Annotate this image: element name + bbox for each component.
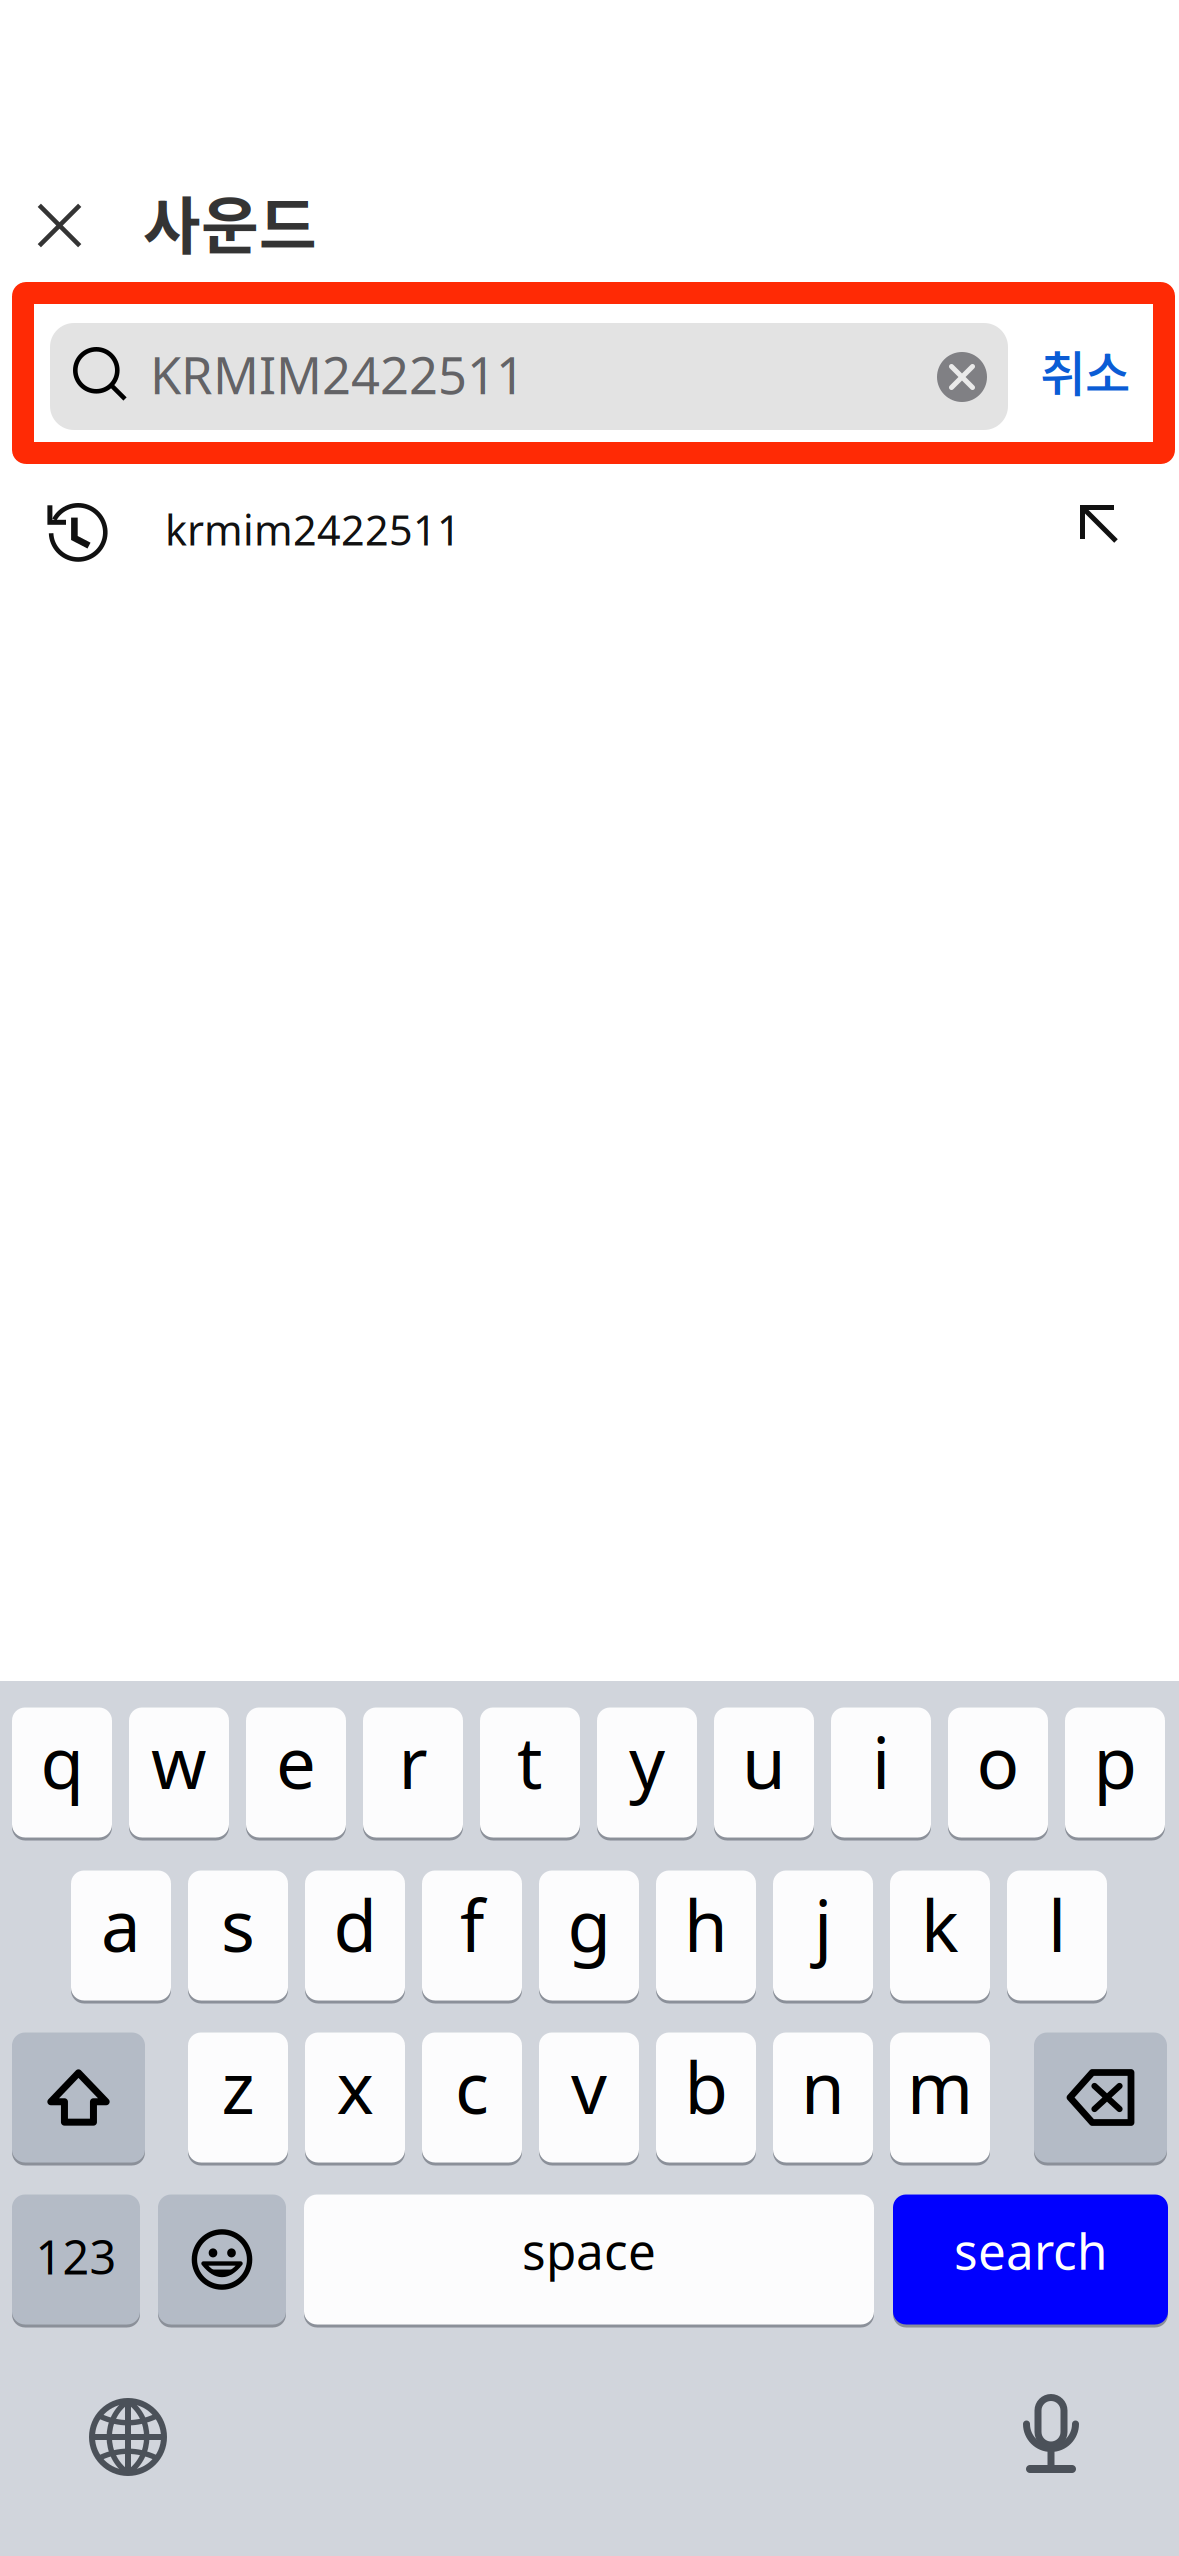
button[interactable]: s	[188, 1869, 288, 2002]
staticText: g	[567, 1878, 610, 1971]
staticText: d	[333, 1878, 376, 1971]
staticText: krmim2422511	[165, 502, 461, 557]
button[interactable]: Delete	[1034, 2031, 1167, 2164]
button[interactable]: i	[831, 1706, 931, 1839]
staticText: u	[742, 1715, 786, 1808]
staticText: s	[221, 1878, 255, 1971]
staticText: q	[40, 1715, 83, 1808]
button[interactable]: v	[539, 2031, 639, 2164]
staticText: m	[907, 2040, 973, 2133]
button[interactable]: Clear text	[921, 336, 1003, 418]
staticText: p	[1093, 1715, 1136, 1808]
staticText: z	[221, 2040, 254, 2133]
staticText: t	[517, 1715, 543, 1808]
button[interactable]: d	[305, 1869, 405, 2002]
button[interactable]: y	[597, 1706, 697, 1839]
staticText: j	[814, 1878, 832, 1971]
button[interactable]: Next keyboard	[72, 2381, 184, 2493]
button[interactable]: search	[893, 2193, 1168, 2326]
button[interactable]: Numbers	[12, 2193, 140, 2326]
button[interactable]: w	[129, 1706, 229, 1839]
staticText: 취소	[1040, 335, 1130, 406]
button[interactable]: g	[539, 1869, 639, 2002]
button[interactable]: l	[1007, 1869, 1107, 2002]
staticText: b	[684, 2040, 727, 2133]
button[interactable]: t	[480, 1706, 580, 1839]
staticText: l	[1048, 1878, 1066, 1971]
button[interactable]: Shift	[12, 2031, 145, 2164]
staticText: f	[460, 1878, 484, 1971]
staticText: search	[954, 2218, 1107, 2283]
button[interactable]: KRMIM2422511	[50, 323, 1008, 430]
staticText: 사운드	[143, 176, 317, 267]
staticText: e	[276, 1715, 316, 1808]
staticText: c	[455, 2040, 489, 2133]
button[interactable]: f	[422, 1869, 522, 2002]
button[interactable]: m	[890, 2031, 990, 2164]
staticText: k	[921, 1878, 959, 1971]
button[interactable]: krmim2422511	[0, 478, 1179, 590]
staticText: y	[629, 1715, 665, 1808]
button[interactable]: a	[71, 1869, 171, 2002]
button[interactable]: Close	[15, 181, 104, 270]
button[interactable]: r	[363, 1706, 463, 1839]
staticText: x	[336, 2040, 373, 2133]
staticText: w	[151, 1715, 207, 1808]
button[interactable]: h	[656, 1869, 756, 2002]
button[interactable]: u	[714, 1706, 814, 1839]
staticText: 123	[35, 2225, 116, 2287]
staticText: n	[801, 2040, 845, 2133]
button[interactable]: q	[12, 1706, 112, 1839]
button[interactable]: z	[188, 2031, 288, 2164]
staticText: a	[101, 1878, 141, 1971]
button[interactable]: space	[304, 2193, 874, 2326]
button[interactable]: 취소	[1028, 323, 1142, 418]
staticText: o	[976, 1715, 1019, 1808]
button[interactable]: n	[773, 2031, 873, 2164]
button[interactable]: b	[656, 2031, 756, 2164]
button[interactable]: x	[305, 2031, 405, 2164]
button[interactable]: k	[890, 1869, 990, 2002]
button[interactable]: Emoji	[158, 2193, 286, 2326]
button[interactable]: o	[948, 1706, 1048, 1839]
staticText: h	[684, 1878, 728, 1971]
button[interactable]: p	[1065, 1706, 1165, 1839]
staticText: space	[522, 2218, 656, 2283]
button[interactable]: j	[773, 1869, 873, 2002]
staticText: KRMIM2422511	[150, 341, 525, 408]
button[interactable]: e	[246, 1706, 346, 1839]
staticText: v	[571, 2040, 607, 2133]
button[interactable]: Dictation	[1018, 2377, 1094, 2491]
button[interactable]: c	[422, 2031, 522, 2164]
staticText: i	[872, 1715, 890, 1808]
staticText: r	[398, 1715, 427, 1808]
